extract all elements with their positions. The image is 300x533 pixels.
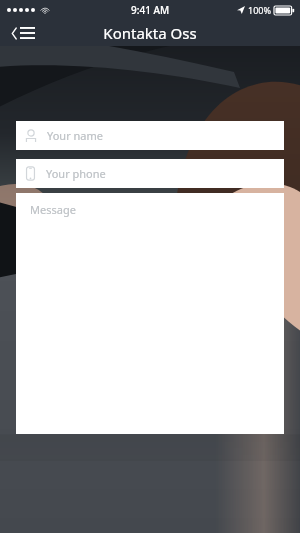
staticText: Your phone (46, 166, 106, 181)
staticText: Kontakta Oss (103, 23, 197, 43)
staticText: Message (30, 202, 76, 217)
staticText: Your name (47, 128, 103, 143)
button[interactable]: Your phone (16, 159, 284, 188)
staticText: 9:41 AM (131, 3, 170, 17)
button[interactable]: Menu (0, 23, 47, 43)
button[interactable]: Your name (16, 121, 284, 150)
staticText: 100% (248, 4, 271, 16)
